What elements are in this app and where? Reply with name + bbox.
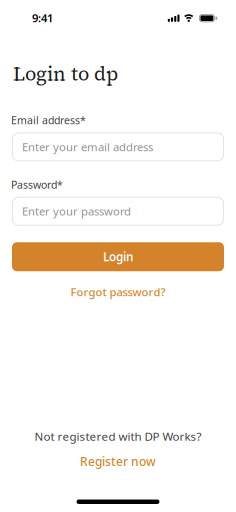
staticText: Enter your email address <box>22 139 153 154</box>
staticText: 9:41 <box>32 10 53 26</box>
staticText: Login to dp <box>13 60 118 87</box>
staticText: Login <box>103 249 133 265</box>
staticText: Enter your password <box>22 204 131 219</box>
button[interactable]: Register now <box>80 453 156 469</box>
staticText: Forgot password? <box>70 284 165 299</box>
button[interactable]: Enter your email address <box>12 132 224 161</box>
staticText: Register now <box>80 453 156 469</box>
staticText: Email address* <box>11 113 86 127</box>
button[interactable]: Forgot password? <box>70 284 165 299</box>
button[interactable]: Enter your password <box>12 197 224 226</box>
staticText: Password* <box>11 177 63 192</box>
staticText: Not registered with DP Works? <box>34 428 201 444</box>
button[interactable]: Login <box>12 242 224 271</box>
